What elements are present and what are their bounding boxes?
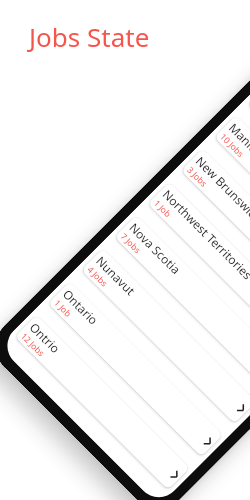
staticText: New Brunswick <box>193 153 250 226</box>
staticText: Manitoba <box>226 120 250 169</box>
staticText: Ontario <box>60 286 102 328</box>
staticText: 3 Jobs <box>184 164 210 190</box>
other: Open Nunavut <box>234 401 246 414</box>
staticText: 12 Jobs <box>18 330 47 359</box>
staticText: 1 Job <box>51 297 74 320</box>
staticText: Jobs State <box>29 19 150 54</box>
staticText: Nunavut <box>93 252 139 298</box>
button[interactable]: Ontrio <box>15 315 190 490</box>
button[interactable]: Nunavut <box>81 248 250 424</box>
staticText: 4 Jobs <box>85 264 110 289</box>
other: Open Ontario <box>200 434 213 447</box>
other: Open Ontrio <box>167 467 180 480</box>
button[interactable]: British Columbia <box>247 82 250 257</box>
button[interactable]: New Brunswick <box>181 149 250 324</box>
button[interactable]: Nova Scotia <box>114 215 250 390</box>
staticText: 10 Jobs <box>217 131 246 160</box>
staticText: Nova Scotia <box>126 219 184 277</box>
staticText: Northwest Territories <box>159 186 250 283</box>
button[interactable]: Ontario <box>48 281 223 457</box>
button[interactable]: Northwest Territories <box>147 182 250 357</box>
button[interactable]: Manitoba <box>214 115 250 291</box>
staticText: 1 Job <box>151 197 174 220</box>
staticText: Ontrio <box>27 319 64 356</box>
staticText: 7 Jobs <box>118 231 143 256</box>
